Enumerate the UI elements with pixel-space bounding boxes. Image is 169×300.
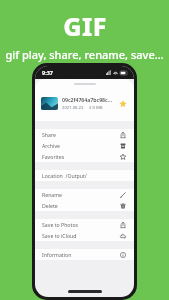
button[interactable]: Delete <box>35 200 134 211</box>
staticText: Save to iCloud <box>42 232 119 239</box>
button[interactable]: Information <box>35 249 134 260</box>
button[interactable]: Share <box>35 129 134 140</box>
staticText: Information <box>42 251 119 258</box>
staticText: Location /Output/ <box>42 172 127 179</box>
button[interactable]: Favorites <box>35 151 134 162</box>
staticText: 2021.08.23 <box>62 105 84 111</box>
button[interactable]: Save to Photos <box>35 219 134 230</box>
button[interactable]: Save to iCloud <box>35 230 134 241</box>
staticText: 09c2f4764a7bc98c…c9f6a418269 3a.gif <box>62 96 117 103</box>
button[interactable]: Rename <box>35 189 134 200</box>
staticText: gif play, share, rename, save… <box>5 47 164 62</box>
staticText: 3.9 MB <box>89 105 103 111</box>
button[interactable]: 09c2f4764a7bc98c…c9f6a418269 3a.gif <box>35 96 134 111</box>
staticText: Save to Photos <box>42 221 119 228</box>
staticText: Share <box>42 131 119 138</box>
staticText: 9:37 <box>42 69 53 76</box>
staticText: Favorites <box>42 153 119 160</box>
staticText: GIF <box>63 9 107 43</box>
staticText: Delete <box>42 202 119 209</box>
staticText: Archive <box>42 142 119 149</box>
staticText: Rename <box>42 191 119 198</box>
button[interactable]: Favorite <box>117 98 128 109</box>
button[interactable]: Location /Output/ <box>35 170 134 181</box>
button[interactable]: Archive <box>35 140 134 151</box>
